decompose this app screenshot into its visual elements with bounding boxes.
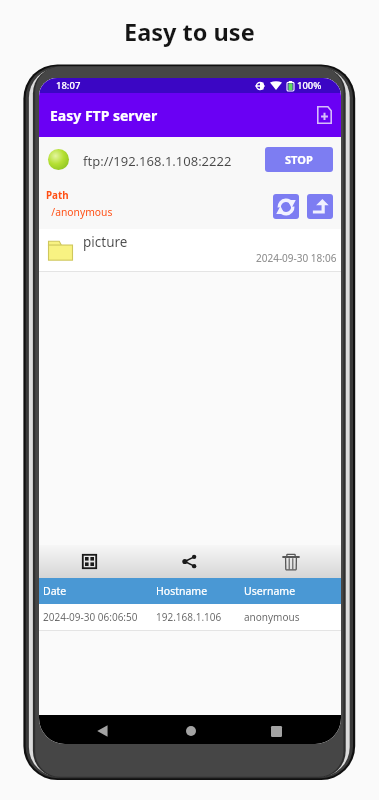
staticText: 100% — [297, 79, 322, 92]
staticText: Path — [46, 189, 69, 202]
staticText: 192.168.1.106 — [156, 610, 222, 624]
staticText: /anonymous — [46, 205, 113, 219]
button[interactable]: Refresh — [273, 194, 299, 219]
button[interactable]: STOP — [265, 147, 333, 172]
staticText: 2024-09-30 06:06:50 — [43, 610, 138, 624]
button[interactable]: Recents — [259, 718, 294, 744]
staticText: Easy to use — [124, 16, 255, 48]
staticText: 18:07 — [56, 79, 81, 92]
button[interactable]: Delete — [240, 545, 341, 578]
button[interactable]: Home — [173, 718, 208, 744]
button[interactable]: Share — [139, 545, 240, 578]
button[interactable]: Back — [85, 718, 120, 744]
button[interactable]: picture — [39, 229, 341, 271]
staticText: anonymous — [244, 610, 300, 624]
staticText: 2024-09-30 18:06 — [256, 251, 337, 265]
staticText: ftp://192.168.1.108:2222 — [83, 152, 232, 170]
staticText: Easy FTP server — [50, 106, 158, 125]
staticText: Username — [244, 584, 296, 598]
button[interactable]: Select all — [39, 545, 139, 578]
button[interactable]: New file — [310, 99, 339, 131]
button[interactable]: Up one level — [307, 194, 333, 219]
staticText: Date — [43, 584, 67, 598]
staticText: picture — [83, 233, 128, 251]
staticText: Hostname — [156, 584, 208, 598]
staticText: STOP — [285, 152, 313, 167]
